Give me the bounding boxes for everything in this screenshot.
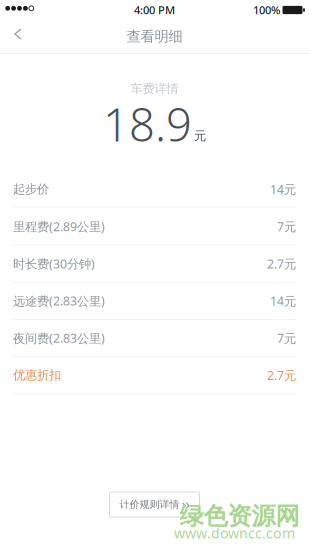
staticText: 14元	[270, 292, 296, 309]
button[interactable]: 远途费(2.83公里)	[0, 283, 309, 320]
staticText: 2.7元	[267, 367, 296, 384]
staticText: 7元	[277, 218, 296, 235]
button[interactable]: 夜间费(2.83公里)	[0, 320, 309, 357]
staticText: 14元	[270, 181, 296, 198]
staticText: 起步价	[13, 181, 49, 197]
staticText: 100%	[253, 2, 280, 18]
staticText: 夜间费(2.83公里)	[13, 330, 105, 346]
staticText: 4:00 PM	[134, 2, 175, 18]
staticText: www.downcc.com	[174, 523, 295, 543]
button[interactable]: Back	[0, 20, 38, 53]
button[interactable]: 时长费(30分钟)	[0, 245, 309, 283]
staticText: 车费详情	[130, 81, 178, 96]
button[interactable]: 里程费(2.89公里)	[0, 208, 309, 245]
staticText: 2.7元	[267, 255, 296, 272]
button[interactable]: 优惠折扣	[0, 357, 309, 394]
staticText: 优惠折扣	[13, 367, 61, 383]
staticText: 里程费(2.89公里)	[13, 218, 105, 235]
staticText: 7元	[277, 330, 296, 346]
staticText: 18.9	[103, 93, 192, 155]
staticText: 时长费(30分钟)	[13, 255, 95, 272]
staticText: 远途费(2.83公里)	[13, 292, 105, 309]
button[interactable]: 计价规则详情	[109, 492, 199, 517]
staticText: 计价规则详情	[119, 498, 179, 511]
staticText: 元	[194, 128, 206, 144]
staticText: 查看明细	[126, 27, 182, 45]
staticText: 绿色资源网	[179, 501, 299, 532]
button[interactable]: 起步价	[0, 171, 309, 208]
